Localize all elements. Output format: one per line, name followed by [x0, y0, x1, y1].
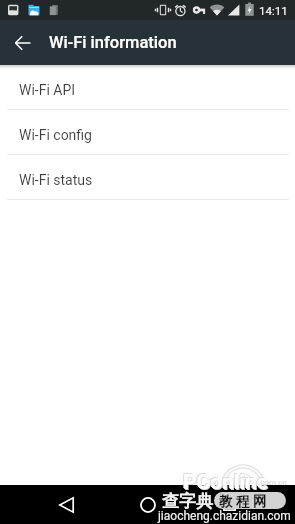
- button[interactable]: Wi-Fi API: [0, 65, 295, 110]
- staticText: Wi-Fi config: [19, 127, 92, 143]
- button[interactable]: Back: [42, 485, 90, 524]
- staticText: 查字典: [162, 491, 213, 512]
- button[interactable]: Home: [124, 485, 172, 524]
- staticText: Wi-Fi information: [49, 33, 177, 52]
- staticText: PConline: [184, 471, 270, 496]
- staticText: 教 程 网: [219, 492, 267, 510]
- staticText: PConline: [182, 469, 268, 494]
- staticText: jiaocheng.chazidian.com: [158, 509, 291, 523]
- staticText: 14:11: [259, 4, 288, 17]
- staticText: PConline: [183, 470, 269, 495]
- button[interactable]: Wi-Fi config: [0, 110, 295, 155]
- staticText: Wi-Fi status: [19, 172, 93, 188]
- staticText: Wi-Fi API: [19, 82, 76, 98]
- button[interactable]: Wi-Fi status: [0, 155, 295, 200]
- button[interactable]: Recent apps: [205, 485, 253, 524]
- staticText: .com.cn: [258, 478, 287, 487]
- button[interactable]: Navigate up: [0, 20, 45, 65]
